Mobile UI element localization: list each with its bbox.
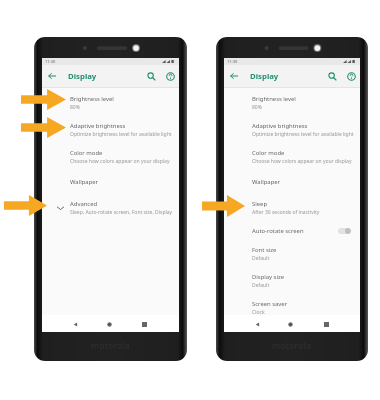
staticText: Display: [250, 71, 279, 82]
staticText: Color mode: [252, 149, 285, 157]
button[interactable]: Adaptive brightness: [224, 116, 360, 143]
staticText: Adaptive brightness: [70, 122, 126, 130]
staticText: Brightness level: [252, 95, 296, 103]
button[interactable]: Back: [44, 68, 60, 84]
staticText: Default: [252, 282, 270, 289]
staticText: Display size: [252, 273, 285, 281]
staticText: motorola: [272, 340, 312, 352]
staticText: 11:30: [45, 59, 56, 64]
staticText: Font size: [252, 246, 277, 254]
staticText: Default: [252, 255, 270, 262]
button[interactable]: Advanced: [42, 194, 179, 221]
staticText: Auto-rotate screen: [252, 227, 304, 235]
button[interactable]: Sleep: [224, 194, 360, 221]
staticText: Optimize brightness level for available …: [252, 131, 354, 138]
button[interactable]: Home: [283, 317, 297, 331]
staticText: Screen saver: [252, 300, 288, 308]
button[interactable]: Help: [343, 68, 359, 84]
staticText: After 30 seconds of inactivity: [252, 209, 320, 216]
button[interactable]: Auto-rotate screen toggle: [338, 228, 351, 234]
button[interactable]: Search: [324, 68, 340, 84]
button[interactable]: Screen saver: [224, 294, 360, 321]
staticText: Sleep, Auto-rotate screen, Font size, Di…: [70, 209, 173, 216]
staticText: Optimize brightness level for available …: [70, 131, 172, 138]
button[interactable]: Font size: [224, 240, 360, 267]
staticText: Display: [68, 71, 97, 82]
staticText: motorola: [91, 340, 131, 352]
button[interactable]: Brightness level: [224, 89, 360, 116]
staticText: Wallpaper: [70, 178, 99, 186]
staticText: Adaptive brightness: [252, 122, 308, 130]
button[interactable]: Display size: [224, 267, 360, 294]
button[interactable]: Wallpaper: [42, 170, 179, 194]
staticText: Brightness level: [70, 95, 114, 103]
button[interactable]: Back: [250, 317, 264, 331]
staticText: Choose how colors appear on your display: [70, 158, 170, 165]
button[interactable]: Recents: [137, 317, 151, 331]
button[interactable]: Back: [226, 68, 242, 84]
button[interactable]: Brightness level: [42, 89, 179, 116]
button[interactable]: Recents: [319, 317, 333, 331]
button[interactable]: Back: [68, 317, 82, 331]
staticText: Wallpaper: [252, 178, 281, 186]
button[interactable]: Color mode: [42, 143, 179, 170]
button[interactable]: Color mode: [224, 143, 360, 170]
staticText: Advanced: [70, 200, 98, 208]
button[interactable]: Home: [102, 317, 116, 331]
button[interactable]: Auto-rotate screen: [224, 221, 360, 240]
staticText: Sleep: [252, 200, 268, 208]
staticText: 80%: [70, 104, 80, 111]
staticText: Color mode: [70, 149, 103, 157]
staticText: Clock: [252, 309, 265, 316]
staticText: Choose how colors appear on your display: [252, 158, 352, 165]
button[interactable]: Adaptive brightness: [42, 116, 179, 143]
button[interactable]: Search: [143, 68, 159, 84]
staticText: 11:30: [227, 59, 238, 64]
staticText: 80%: [252, 104, 262, 111]
button[interactable]: Help: [162, 68, 178, 84]
button[interactable]: Wallpaper: [224, 170, 360, 194]
